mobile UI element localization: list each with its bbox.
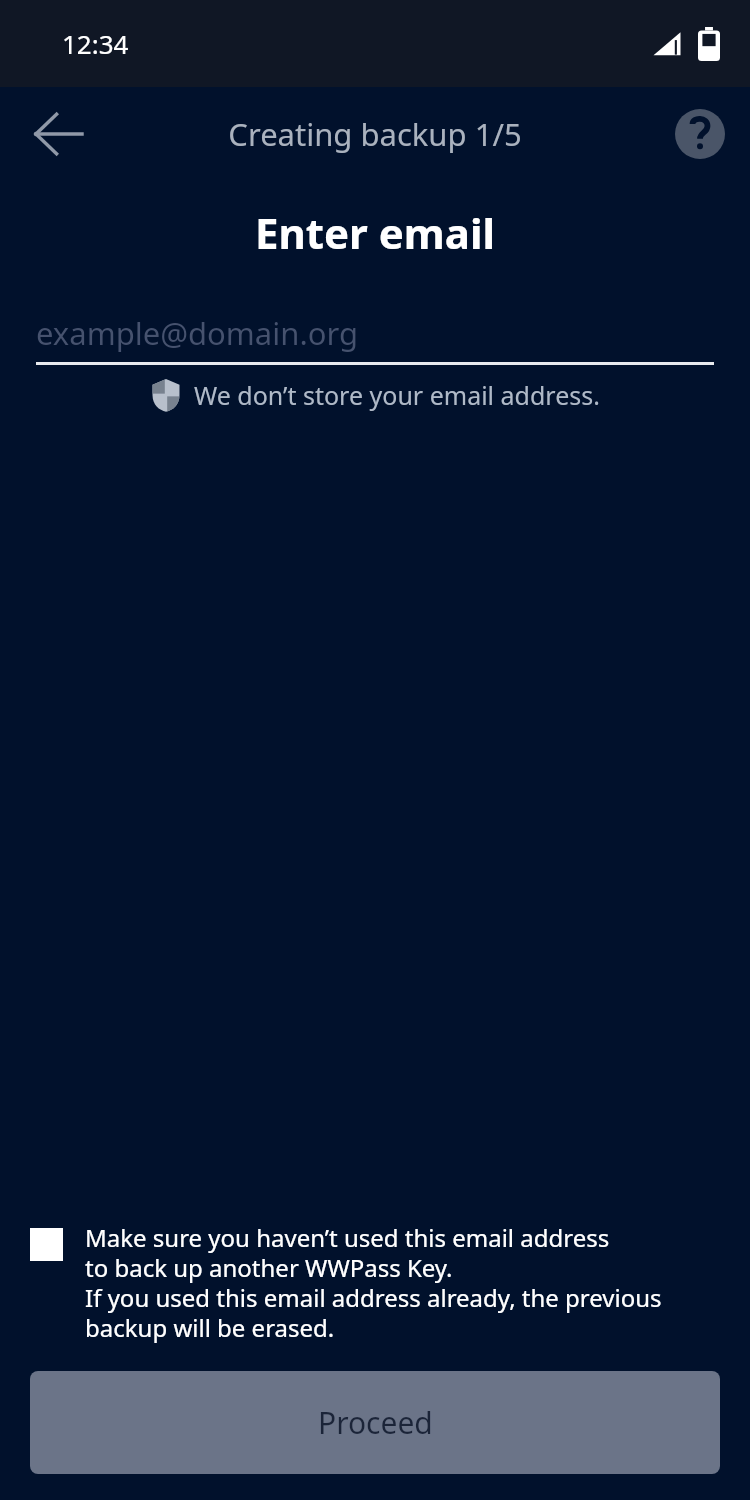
- staticText: example@domain.org: [36, 312, 359, 354]
- button[interactable]: example@domain.org: [36, 309, 714, 357]
- staticText: Make sure you haven’t used this email ad…: [85, 1221, 662, 1344]
- button[interactable]: Back: [16, 91, 102, 177]
- button[interactable]: Proceed: [30, 1371, 720, 1474]
- staticText: We don’t store your email address.: [194, 378, 600, 412]
- staticText: Proceed: [318, 1402, 433, 1443]
- staticText: Enter email: [0, 204, 750, 261]
- button[interactable]: Help: [666, 100, 734, 168]
- staticText: Creating backup 1/5: [228, 113, 522, 155]
- staticText: 12:34: [62, 26, 129, 61]
- button[interactable]: Make sure you haven’t used this email ad…: [30, 1221, 730, 1344]
